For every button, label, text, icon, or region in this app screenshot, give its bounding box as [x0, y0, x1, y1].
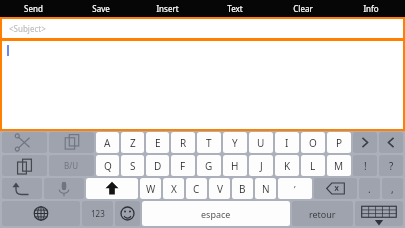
staticText: I [285, 136, 289, 150]
staticText: Y [232, 136, 238, 150]
staticText: P [336, 136, 343, 150]
button[interactable]: Send [0, 0, 67, 17]
button[interactable]: I [275, 132, 299, 153]
button[interactable]: Copy [49, 132, 94, 153]
staticText: Z [130, 136, 136, 150]
button[interactable]: A [96, 132, 119, 153]
staticText: ’ [294, 183, 296, 195]
staticText: T [206, 136, 212, 150]
button[interactable]: U [249, 132, 273, 153]
button[interactable]: Dictate [44, 178, 84, 199]
button[interactable]: N [255, 178, 276, 199]
staticText: G [205, 159, 213, 173]
button[interactable]: Undo [2, 178, 42, 199]
button[interactable]: ’ [278, 178, 312, 199]
button[interactable]: G [197, 155, 221, 176]
button[interactable]: X [163, 178, 184, 199]
staticText: Save [92, 3, 110, 14]
staticText: D [154, 159, 162, 173]
staticText: espace [201, 208, 231, 220]
button[interactable]: S [121, 155, 144, 176]
staticText: Info [363, 3, 379, 14]
staticText: Insert [156, 3, 179, 14]
staticText: . [368, 182, 371, 196]
staticText: Send [24, 3, 43, 14]
staticText: ? [389, 159, 394, 173]
button[interactable]: Y [223, 132, 247, 153]
staticText: ! [364, 159, 367, 173]
button[interactable]: Info [337, 0, 405, 17]
staticText: , [391, 182, 394, 196]
button[interactable]: B/U [49, 155, 94, 176]
staticText: B/U [64, 160, 79, 171]
button[interactable]: F [171, 155, 195, 176]
button[interactable]: T [197, 132, 221, 153]
button[interactable]: Language [2, 201, 80, 226]
button[interactable]: Cut [2, 132, 47, 153]
button[interactable]: Backspace [314, 178, 357, 199]
staticText: N [262, 182, 270, 196]
button[interactable]: H [223, 155, 247, 176]
button[interactable]: , [382, 178, 403, 199]
button[interactable]: ! [353, 155, 377, 176]
button[interactable]: Z [121, 132, 144, 153]
staticText: retour [309, 208, 336, 220]
button[interactable]: Paste [2, 155, 47, 176]
staticText: 123 [91, 208, 105, 219]
staticText: R [180, 136, 187, 150]
staticText: Text [227, 3, 243, 14]
button[interactable]: Insert [134, 0, 201, 17]
button[interactable]: Clear [269, 0, 337, 17]
button[interactable]: E [146, 132, 169, 153]
button[interactable] [2, 41, 403, 129]
staticText: <Subject> [9, 23, 46, 34]
button[interactable]: Shift [86, 178, 138, 199]
button[interactable]: 123 [82, 201, 113, 226]
button[interactable]: Q [96, 155, 119, 176]
staticText: L [310, 159, 316, 173]
staticText: V [217, 182, 223, 196]
staticText: W [146, 182, 156, 196]
staticText: F [180, 159, 186, 173]
button[interactable]: R [171, 132, 195, 153]
button[interactable]: Text [201, 0, 269, 17]
button[interactable]: M [327, 155, 351, 176]
button[interactable]: C [186, 178, 207, 199]
button[interactable]: K [275, 155, 299, 176]
button[interactable]: O [301, 132, 325, 153]
staticText: Q [104, 159, 112, 173]
button[interactable]: Previous [353, 132, 377, 153]
button[interactable]: Next [379, 132, 403, 153]
staticText: J [260, 159, 263, 173]
staticText: E [155, 136, 161, 150]
button[interactable]: Save [67, 0, 134, 17]
button[interactable]: W [140, 178, 161, 199]
button[interactable]: <Subject> [2, 19, 403, 38]
staticText: X [171, 182, 177, 196]
button[interactable]: retour [292, 201, 353, 226]
staticText: C [193, 182, 200, 196]
button[interactable]: D [146, 155, 169, 176]
staticText: M [334, 159, 344, 173]
button[interactable]: L [301, 155, 325, 176]
staticText: S [130, 159, 136, 173]
button[interactable]: Emoji [115, 201, 140, 226]
button[interactable]: J [249, 155, 273, 176]
button[interactable]: V [209, 178, 230, 199]
staticText: B [239, 182, 246, 196]
staticText: K [284, 159, 291, 173]
staticText: H [231, 159, 239, 173]
button[interactable]: espace [142, 201, 290, 226]
staticText: U [257, 136, 265, 150]
staticText: O [309, 136, 317, 150]
staticText: A [104, 136, 111, 150]
button[interactable]: B [232, 178, 253, 199]
button[interactable]: ? [379, 155, 403, 176]
button[interactable]: P [327, 132, 351, 153]
button[interactable]: . [359, 178, 380, 199]
staticText: Clear [293, 3, 313, 14]
button[interactable]: Hide keyboard [355, 201, 403, 226]
